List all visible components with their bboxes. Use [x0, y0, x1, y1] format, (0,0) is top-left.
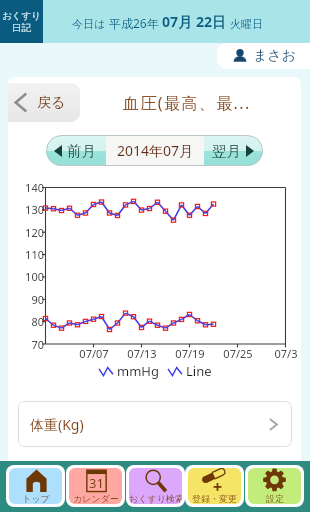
button[interactable]: 登録・変更	[188, 468, 241, 504]
staticText: 今日は	[72, 16, 109, 31]
staticText: 120	[8, 225, 44, 240]
staticText: 100	[8, 269, 44, 284]
staticText: 07/3	[268, 346, 304, 361]
staticText: まさお	[253, 47, 296, 65]
staticText: おくすり	[2, 10, 41, 22]
staticText: 登録・変更	[192, 493, 237, 504]
staticText: 31	[89, 474, 104, 492]
staticText: 07/19	[172, 346, 208, 361]
staticText: 平成26年	[109, 15, 162, 31]
staticText: 設定	[266, 493, 284, 504]
staticText: 07/13	[124, 346, 160, 361]
staticText: 140	[8, 180, 44, 195]
button[interactable]: おくすり検索	[129, 468, 182, 504]
staticText: 07月	[162, 12, 196, 31]
button[interactable]: トップ	[9, 468, 62, 504]
staticText: 血圧(最高、最...	[123, 92, 251, 114]
staticText: カレンダー	[73, 493, 119, 504]
staticText: 火曜日	[230, 17, 263, 31]
staticText: 130	[8, 202, 44, 217]
staticText: 日記	[12, 22, 31, 34]
staticText: Line	[186, 362, 212, 380]
staticText: トップ	[22, 493, 50, 504]
staticText: 90	[8, 292, 44, 307]
staticText: おくすり検索	[129, 493, 182, 504]
staticText: 110	[8, 247, 44, 262]
button[interactable]: 体重(Kg)	[18, 401, 292, 447]
button[interactable]: まさお	[217, 43, 310, 69]
staticText: 翌月	[212, 142, 241, 160]
staticText: 70	[8, 337, 44, 352]
button[interactable]: 翌月	[204, 135, 263, 166]
staticText: 前月	[67, 142, 96, 160]
staticText: 07/25	[220, 346, 256, 361]
staticText: 80	[8, 314, 44, 329]
button[interactable]: 戻る	[8, 83, 80, 122]
staticText: 体重(Kg)	[30, 415, 84, 434]
staticText: 22日	[196, 12, 230, 31]
staticText: 2014年07月	[117, 141, 194, 160]
staticText: mmHg	[117, 362, 159, 380]
button[interactable]: おくすり	[0, 0, 43, 43]
staticText: 戻る	[37, 94, 66, 112]
staticText: 07/07	[76, 346, 112, 361]
button[interactable]: 31	[69, 468, 122, 504]
button[interactable]: 設定	[248, 468, 301, 504]
button[interactable]: 前月	[46, 135, 106, 166]
